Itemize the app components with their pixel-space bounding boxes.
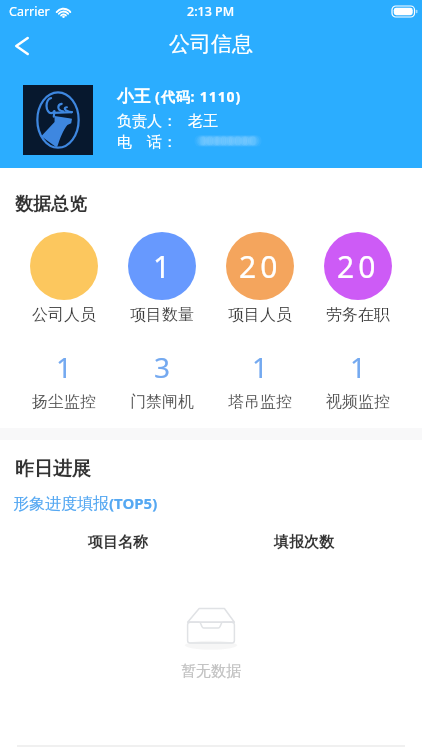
staticText: (TOP5) <box>109 493 158 513</box>
staticText: 门禁闸机 <box>130 392 194 412</box>
staticText: 形象进度填报 <box>13 494 109 514</box>
button[interactable]: 1 <box>226 348 294 412</box>
staticText: 扬尘监控 <box>32 392 96 412</box>
staticText: 20 <box>239 246 282 287</box>
button[interactable]: 20 <box>324 232 392 325</box>
staticText: 暂无数据 <box>181 662 241 681</box>
button[interactable]: 20 <box>226 232 294 325</box>
button[interactable]: 1 <box>324 348 392 412</box>
staticText: 公司人员 <box>32 305 96 325</box>
staticText: 项目人员 <box>228 305 292 325</box>
staticText: 1 <box>153 246 171 287</box>
staticText: 老王 <box>188 112 218 131</box>
staticText: 劳务在职 <box>326 305 390 325</box>
staticText: 电 话： <box>117 131 177 151</box>
button[interactable]: 3 <box>128 348 196 412</box>
staticText: 1 <box>56 348 73 386</box>
staticText: 视频监控 <box>326 392 390 412</box>
button[interactable]: 形象进度填报 <box>13 493 158 514</box>
staticText: 数据总览 <box>15 193 87 216</box>
button[interactable]: 公司人员 <box>30 232 98 325</box>
staticText: 小王 <box>117 86 150 107</box>
staticText: 昨日进展 <box>15 457 91 481</box>
staticText: 20 <box>337 246 380 287</box>
staticText: 1 <box>350 348 367 386</box>
staticText: (代码: 1110) <box>155 87 242 106</box>
staticText: 2:13 PM <box>187 3 235 20</box>
staticText: 3 <box>154 348 171 386</box>
staticText: Carrier <box>9 3 50 20</box>
button[interactable]: 1 <box>30 348 98 412</box>
staticText: 塔吊监控 <box>228 392 292 412</box>
staticText: 填报次数 <box>274 533 334 552</box>
staticText: 项目数量 <box>130 305 194 325</box>
staticText: 项目名称 <box>88 533 148 552</box>
staticText: 负责人： <box>117 112 177 131</box>
staticText: 1 <box>252 348 269 386</box>
button[interactable]: 1 <box>128 232 196 325</box>
button[interactable]: Back <box>4 28 40 64</box>
staticText: 公司信息 <box>169 31 253 57</box>
